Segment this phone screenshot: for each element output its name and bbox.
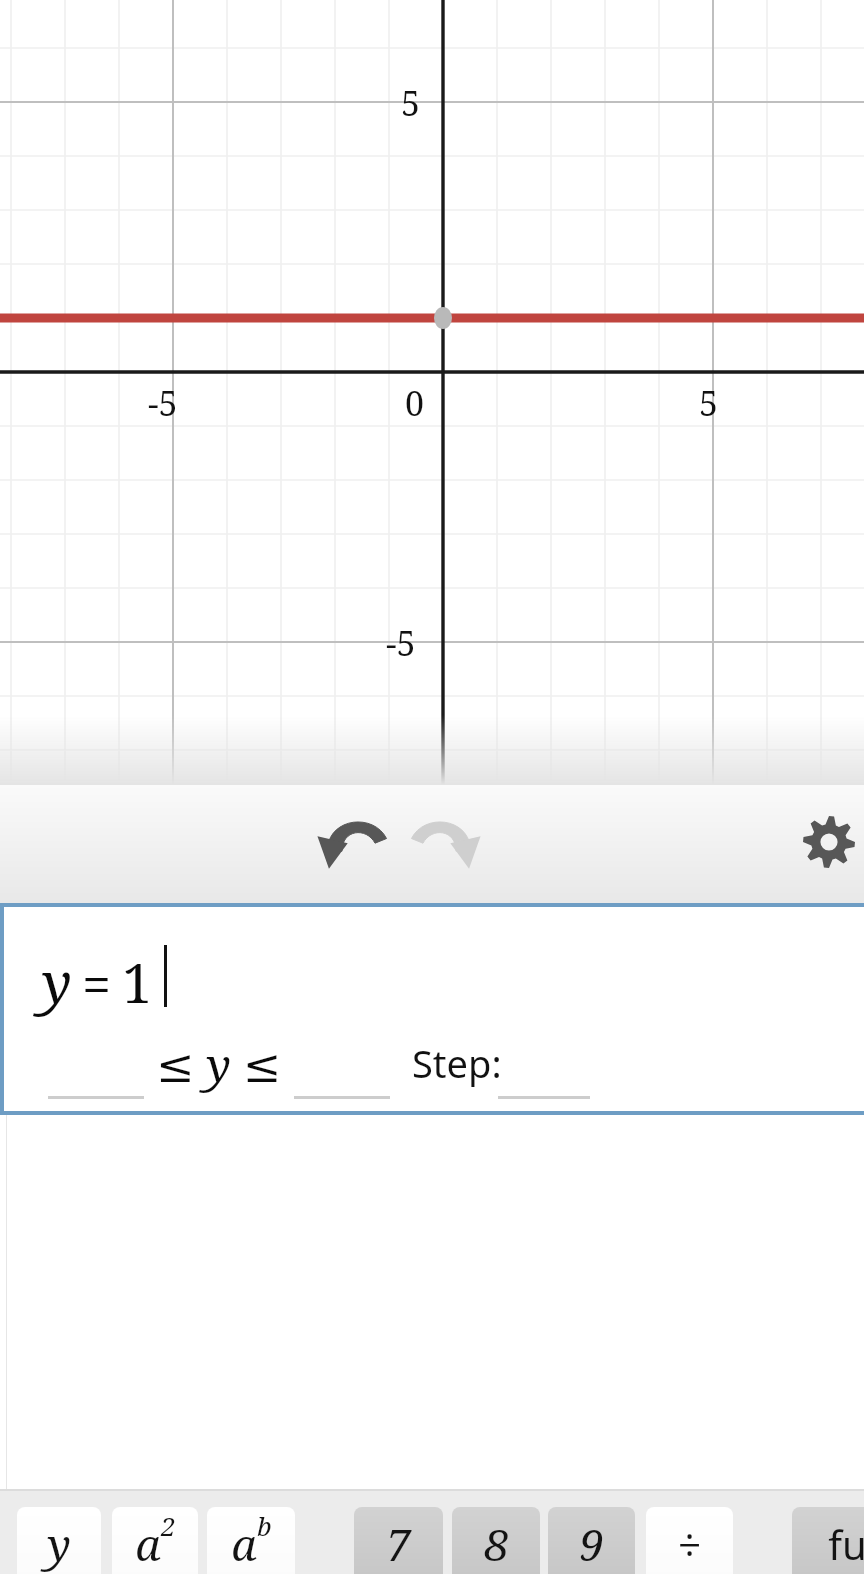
staticText: ≤ y ≤ bbox=[156, 1033, 282, 1096]
staticText: Step: bbox=[412, 1037, 502, 1089]
staticText: = bbox=[82, 948, 112, 1019]
staticText: 0 bbox=[405, 380, 425, 426]
staticText: 5 bbox=[401, 80, 421, 126]
staticText: 8 bbox=[484, 1514, 509, 1574]
staticText: b bbox=[257, 1508, 272, 1543]
button[interactable] bbox=[294, 1071, 390, 1099]
staticText: -5 bbox=[148, 380, 178, 426]
staticText: 9 bbox=[579, 1514, 604, 1574]
staticText: 1 bbox=[122, 945, 153, 1019]
button[interactable] bbox=[48, 1071, 144, 1099]
button[interactable]: a bbox=[112, 1507, 198, 1574]
button[interactable]: Undo bbox=[306, 805, 398, 879]
staticText: 5 bbox=[699, 380, 719, 426]
button[interactable]: y bbox=[0, 903, 864, 1115]
button[interactable]: fu bbox=[792, 1507, 864, 1574]
staticText: 2 bbox=[161, 1508, 176, 1543]
staticText: y bbox=[47, 1514, 71, 1574]
button[interactable]: y bbox=[17, 1507, 101, 1574]
button[interactable]: a bbox=[207, 1507, 295, 1574]
staticText: y bbox=[42, 943, 72, 1019]
staticText: a bbox=[135, 1514, 161, 1574]
staticText: 7 bbox=[386, 1514, 411, 1574]
button[interactable]: 7 bbox=[354, 1507, 443, 1574]
button[interactable]: ÷ bbox=[646, 1507, 733, 1574]
staticText: -5 bbox=[386, 620, 416, 666]
staticText: a bbox=[231, 1514, 257, 1574]
staticText: ÷ bbox=[677, 1514, 702, 1574]
button[interactable]: 9 bbox=[548, 1507, 635, 1574]
button[interactable] bbox=[498, 1071, 590, 1099]
button[interactable]: Settings bbox=[794, 805, 864, 879]
button[interactable]: 8 bbox=[452, 1507, 540, 1574]
staticText: fu bbox=[828, 1517, 864, 1571]
button[interactable]: Redo bbox=[400, 805, 492, 879]
